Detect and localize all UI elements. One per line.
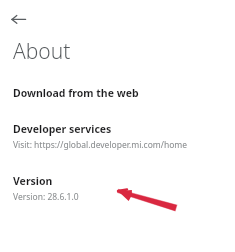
staticText: Visit: https://global.developer.mi.com/h…: [13, 139, 188, 151]
button[interactable]: Version: [13, 174, 79, 203]
staticText: Download from the web: [13, 86, 139, 100]
button[interactable]: Developer services: [13, 122, 188, 151]
button[interactable]: Back: [10, 9, 30, 29]
button[interactable]: Download from the web: [13, 86, 139, 100]
staticText: About: [13, 37, 71, 66]
staticText: Developer services: [13, 122, 112, 136]
staticText: Version: 28.6.1.0: [13, 191, 79, 203]
staticText: Version: [13, 174, 53, 188]
